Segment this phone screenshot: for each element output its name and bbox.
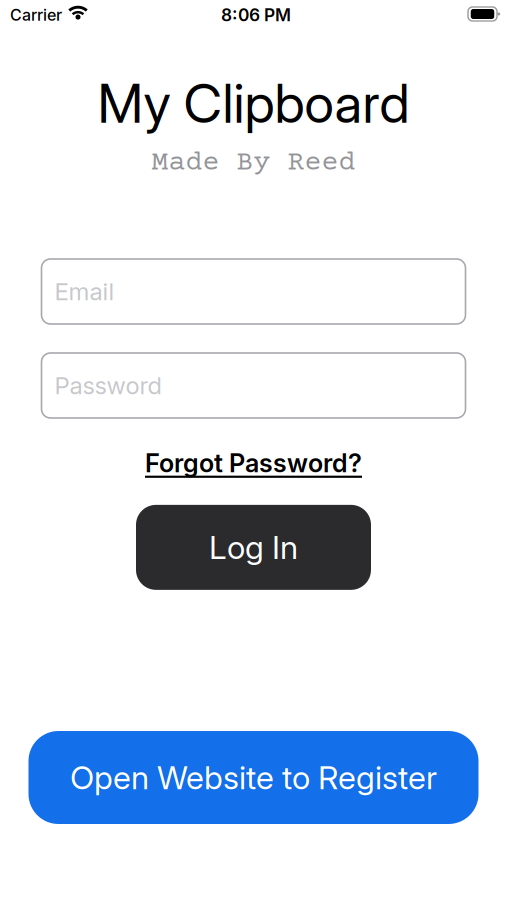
staticText: Forgot Password? <box>145 448 362 478</box>
button[interactable]: Forgot Password? <box>145 448 362 478</box>
staticText: Email <box>54 277 114 306</box>
button[interactable]: Email <box>41 259 465 324</box>
staticText: Made By Reed <box>151 147 355 179</box>
staticText: Log In <box>209 528 298 566</box>
button[interactable]: Log In <box>136 505 371 590</box>
staticText: Open Website to Register <box>70 759 437 796</box>
staticText: Password <box>54 371 161 400</box>
button[interactable]: Password <box>41 353 465 418</box>
staticText: My Clipboard <box>97 71 409 135</box>
staticText: Carrier <box>10 6 62 24</box>
staticText: 8:06 PM <box>221 5 291 25</box>
button[interactable]: Open Website to Register <box>28 731 478 824</box>
